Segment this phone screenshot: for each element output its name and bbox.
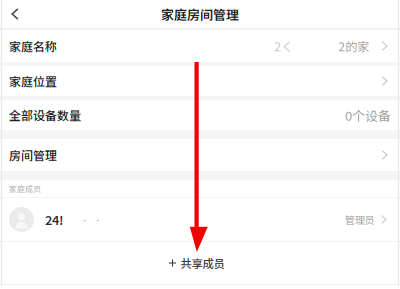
button[interactable]: 共享成员 <box>0 242 400 284</box>
staticText: 家庭位置 <box>9 72 57 90</box>
staticText: 共享成员 <box>180 255 224 271</box>
button[interactable]: 24! <box>0 198 400 241</box>
staticText: 2く <box>274 37 293 55</box>
staticText: 0个设备 <box>345 105 391 124</box>
staticText: 家庭名称 <box>9 37 57 55</box>
button[interactable]: 家庭名称 <box>0 30 400 62</box>
button[interactable]: 家庭位置 <box>0 66 400 96</box>
staticText: 24! <box>45 210 64 229</box>
staticText: 房间管理 <box>9 146 57 164</box>
staticText: 家庭成员 <box>9 183 41 194</box>
staticText: 管理员 <box>345 212 375 227</box>
staticText: 2的家 <box>338 37 369 55</box>
button[interactable]: 全部设备数量 <box>0 100 400 130</box>
button[interactable]: 房间管理 <box>0 139 400 171</box>
staticText: 家庭房间管理 <box>161 5 239 23</box>
button[interactable]: Back <box>0 0 30 28</box>
staticText: 全部设备数量 <box>9 106 81 124</box>
staticText: · · <box>80 213 102 226</box>
